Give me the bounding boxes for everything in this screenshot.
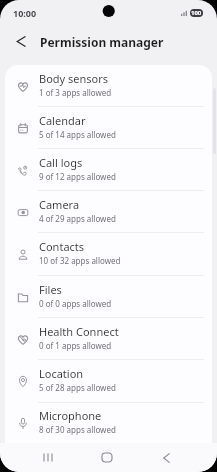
staticText: Calendar — [39, 113, 86, 128]
button[interactable]: Location — [5, 360, 212, 403]
staticText: 5 of 28 apps allowed — [39, 382, 116, 393]
staticText: Files — [39, 282, 62, 297]
button[interactable]: Camera — [5, 191, 212, 233]
button[interactable]: Health Connect — [5, 318, 212, 360]
button[interactable]: Navigate up — [0, 26, 34, 57]
staticText: Health Connect — [39, 324, 119, 339]
button[interactable]: Recent apps — [28, 443, 68, 472]
staticText: 0 of 1 apps allowed — [39, 340, 112, 351]
staticText: 5 of 14 apps allowed — [39, 129, 116, 140]
button[interactable]: Files — [5, 276, 212, 318]
button[interactable]: Contacts — [5, 233, 212, 276]
button[interactable]: Home — [87, 443, 127, 472]
button[interactable]: Body sensors — [5, 65, 212, 107]
staticText: 8 of 30 apps allowed — [39, 424, 116, 435]
staticText: 10:00 — [13, 7, 37, 19]
button[interactable]: Microphone — [5, 403, 212, 443]
staticText: Permission manager — [40, 34, 164, 50]
staticText: 4 of 29 apps allowed — [39, 213, 116, 224]
staticText: 9 of 12 apps allowed — [39, 171, 116, 182]
staticText: Body sensors — [39, 71, 109, 86]
staticText: Location — [39, 366, 84, 381]
button[interactable]: Calendar — [5, 107, 212, 149]
staticText: Camera — [39, 197, 80, 212]
staticText: Microphone — [39, 408, 102, 423]
staticText: Contacts — [39, 239, 85, 254]
staticText: 100 — [191, 9, 202, 17]
staticText: 10 of 32 apps allowed — [39, 255, 121, 266]
button[interactable]: Call logs — [5, 149, 212, 191]
staticText: Call logs — [39, 155, 83, 170]
staticText: 1 of 3 apps allowed — [39, 87, 112, 98]
staticText: 0 of 0 apps allowed — [39, 298, 112, 309]
button[interactable]: Back — [146, 443, 186, 472]
